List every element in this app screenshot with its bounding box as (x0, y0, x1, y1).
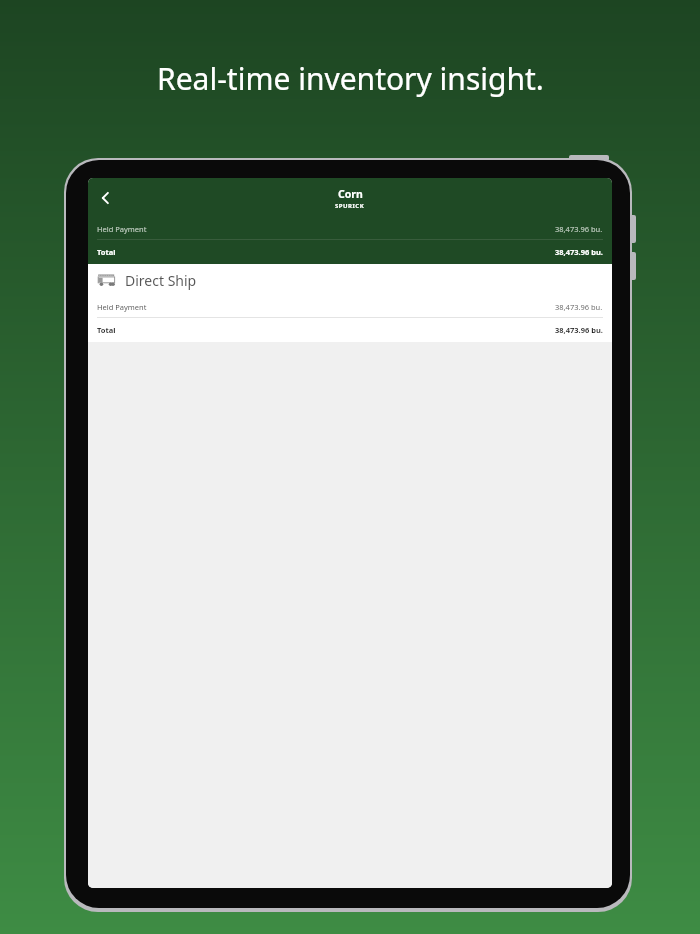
button[interactable]: Held Payment (88, 296, 612, 317)
staticText: Real-time inventory insight. (157, 58, 544, 99)
staticText: SPURICK (335, 202, 365, 210)
button[interactable]: Held Payment (88, 218, 612, 239)
staticText: 38,473.96 bu. (555, 325, 603, 335)
staticText: Held Payment (97, 302, 147, 312)
staticText: Direct Ship (125, 271, 197, 290)
staticText: Total (97, 247, 116, 257)
button[interactable]: Direct Ship (88, 264, 612, 296)
staticText: Total (97, 325, 116, 335)
button[interactable]: Total (88, 240, 612, 264)
staticText: 38,473.96 bu. (555, 302, 603, 312)
staticText: 38,473.96 bu. (555, 224, 603, 234)
button[interactable]: Total (88, 318, 612, 342)
staticText: 38,473.96 bu. (555, 247, 603, 257)
button[interactable]: Back (88, 180, 124, 216)
staticText: Held Payment (97, 224, 147, 234)
staticText: Corn (338, 187, 363, 201)
